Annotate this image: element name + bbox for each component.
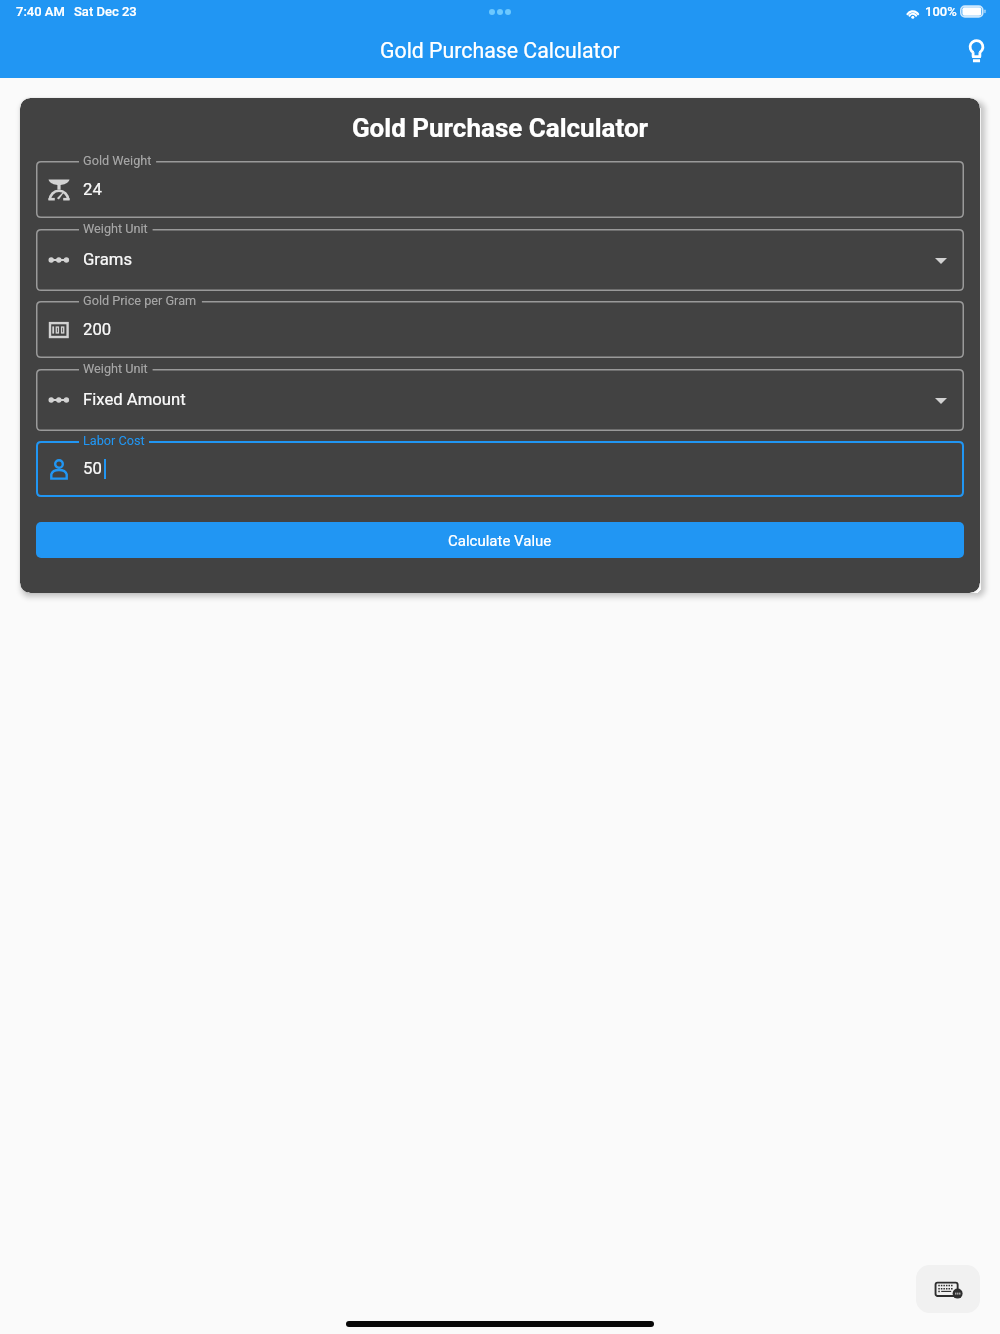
staticText: Weight Unit <box>83 361 148 376</box>
button[interactable]: Weight Unit <box>36 229 964 291</box>
staticText: Gold Purchase Calculator <box>36 113 964 143</box>
button[interactable]: Gold Price per Gram <box>36 301 964 358</box>
button[interactable]: Weight Unit <box>36 369 964 431</box>
button[interactable]: Gold Weight <box>36 161 964 218</box>
staticText: Gold Purchase Calculator <box>380 38 620 63</box>
staticText: Fixed Amount <box>83 390 186 410</box>
staticText: Grams <box>83 250 133 270</box>
staticText: Labor Cost <box>83 433 145 448</box>
button[interactable]: Calculate Value <box>36 522 964 558</box>
staticText: 24 <box>83 180 102 200</box>
staticText: 50 <box>83 459 102 479</box>
staticText: 200 <box>83 320 112 340</box>
button[interactable]: Labor Cost <box>36 441 964 497</box>
staticText: Sat Dec 23 <box>74 4 137 19</box>
staticText: 7:40 AM <box>16 4 65 19</box>
staticText: Calculate Value <box>448 532 552 550</box>
staticText: Weight Unit <box>83 221 148 236</box>
staticText: Gold Weight <box>83 153 152 168</box>
button[interactable]: Switch keyboard <box>916 1265 980 1313</box>
button[interactable]: Toggle theme <box>954 30 998 74</box>
staticText: Gold Price per Gram <box>83 293 197 308</box>
staticText: 100% <box>925 4 957 19</box>
